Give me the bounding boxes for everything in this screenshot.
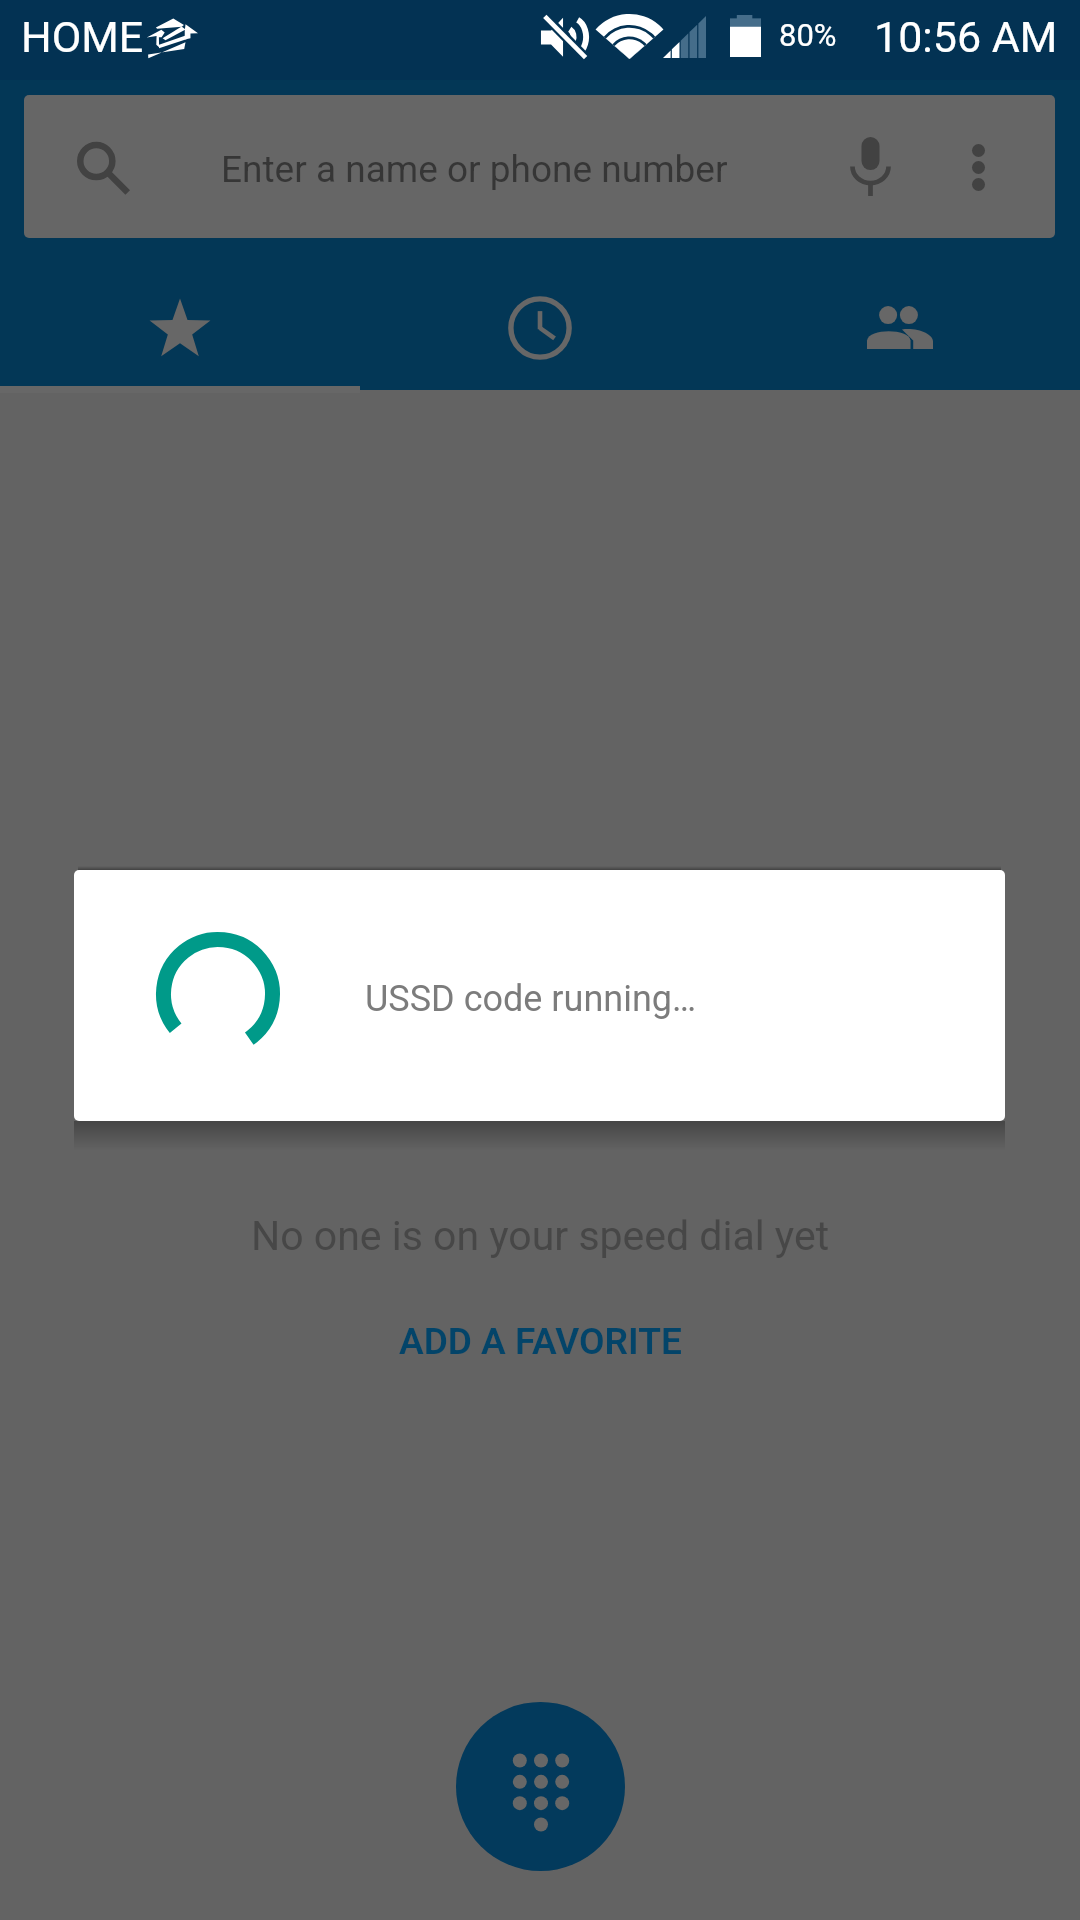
staticText: USSD code running… <box>365 978 697 1020</box>
staticText: 10:56 AM <box>874 12 1058 62</box>
button[interactable]: Speed dial <box>0 265 360 390</box>
other: Search <box>77 141 129 193</box>
button[interactable]: Search <box>24 95 1055 238</box>
staticText: ADD A FAVORITE <box>399 1320 682 1363</box>
button[interactable]: More options <box>938 127 1018 207</box>
staticText: No one is on your speed dial yet <box>251 1212 830 1260</box>
staticText: Enter a name or phone number <box>221 148 728 191</box>
button[interactable]: Recents <box>360 265 720 390</box>
button[interactable]: Voice search <box>820 123 920 210</box>
staticText: HOME <box>21 12 144 62</box>
button[interactable]: Contacts <box>720 265 1080 390</box>
button[interactable]: Open dial pad <box>456 1702 625 1871</box>
button[interactable]: ADD A FAVORITE <box>373 1314 708 1369</box>
staticText: 80% <box>779 17 837 53</box>
